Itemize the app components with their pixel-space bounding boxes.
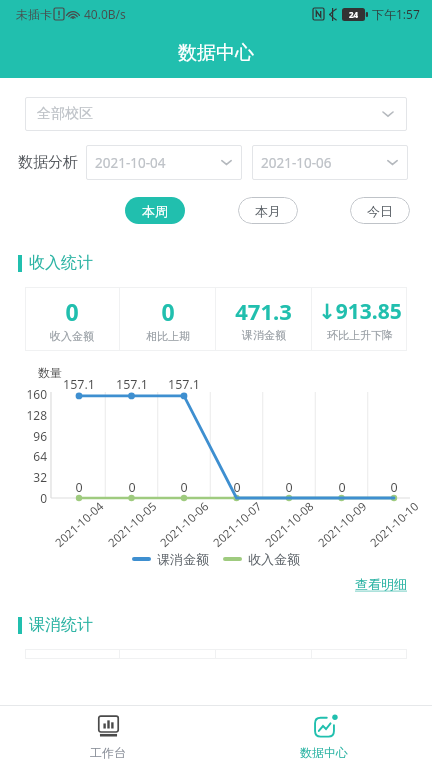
staticText: 0 <box>382 479 406 496</box>
staticText: 今日 <box>367 203 393 219</box>
button[interactable]: 471.3 <box>216 287 311 351</box>
staticText: 0 <box>120 479 144 496</box>
button[interactable]: 0 <box>25 287 119 351</box>
button[interactable]: ↓913.85 <box>312 287 407 351</box>
staticText: 收入金额 <box>50 329 94 343</box>
button[interactable]: 0 <box>120 287 215 351</box>
staticText: 32 <box>16 469 47 485</box>
staticText: 157.1 <box>55 376 103 393</box>
staticText: 0 <box>67 479 91 496</box>
staticText: 工作台 <box>90 745 126 760</box>
button[interactable]: 数据中心 <box>216 706 432 768</box>
staticText: 2021-10-10 <box>366 498 422 551</box>
staticText: 数据分析 <box>18 153 78 172</box>
staticText: 2021-10-06 <box>156 498 212 551</box>
staticText: 数据中心 <box>300 745 348 760</box>
staticText: 0 <box>225 479 249 496</box>
button[interactable]: 今日 <box>350 197 410 224</box>
staticText: 课消统计 <box>29 615 93 635</box>
staticText: 本月 <box>255 203 281 219</box>
staticText: 本周 <box>142 203 168 219</box>
staticText: 0 <box>16 490 47 506</box>
staticText: 相比上期 <box>146 329 190 343</box>
staticText: 2021-10-05 <box>104 498 160 551</box>
staticText: 2021-10-08 <box>261 498 317 551</box>
button[interactable]: 工作台 <box>0 706 216 768</box>
staticText: 157.1 <box>108 376 156 393</box>
staticText: 128 <box>16 407 47 423</box>
staticText: 96 <box>16 428 47 444</box>
staticText: ↓913.85 <box>318 297 402 326</box>
staticText: 40.0B/s <box>84 6 126 22</box>
staticText: 数量 <box>38 365 62 380</box>
staticText: 2021-10-07 <box>209 498 265 551</box>
button[interactable]: 全部校区 <box>25 97 407 131</box>
button[interactable]: 2021-10-06 <box>252 145 408 180</box>
staticText: 0 <box>161 296 175 327</box>
button[interactable]: 2021-10-04 <box>86 145 242 180</box>
staticText: 2021-10-04 <box>95 154 220 172</box>
staticText: 157.1 <box>160 376 208 393</box>
staticText: 0 <box>172 479 196 496</box>
staticText: 下午1:57 <box>372 6 420 22</box>
button[interactable]: 本周 <box>125 197 185 224</box>
staticText: 2021-10-06 <box>261 154 386 172</box>
staticText: 课消金额 <box>157 551 209 567</box>
staticText: 未插卡 <box>16 7 52 22</box>
staticText: 收入金额 <box>248 551 300 567</box>
staticText: 课消金额 <box>242 328 286 342</box>
staticText: 2021-10-04 <box>51 498 107 551</box>
button[interactable]: 查看明细 <box>352 573 410 595</box>
staticText: 查看明细 <box>355 576 407 592</box>
staticText: 160 <box>16 386 47 402</box>
staticText: 2021-10-09 <box>314 498 370 551</box>
staticText: 471.3 <box>235 296 292 326</box>
staticText: 0 <box>277 479 301 496</box>
staticText: 环比上升下降 <box>327 328 393 342</box>
staticText: 数据中心 <box>178 41 254 65</box>
staticText: 收入统计 <box>29 253 93 273</box>
staticText: 全部校区 <box>37 105 381 123</box>
staticText: 0 <box>65 296 79 327</box>
staticText: 0 <box>330 479 354 496</box>
staticText: 64 <box>16 448 47 464</box>
staticText: 24 <box>349 9 359 20</box>
button[interactable]: 本月 <box>238 197 298 224</box>
